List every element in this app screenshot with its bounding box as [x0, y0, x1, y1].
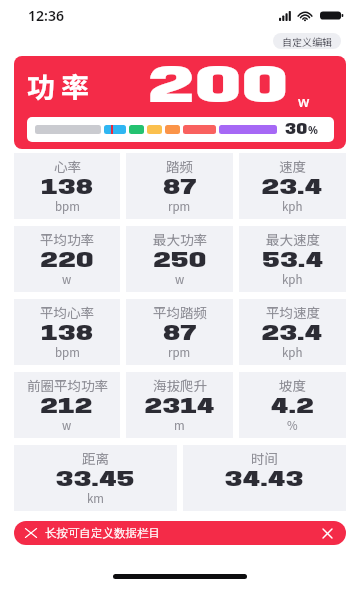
button[interactable]: 平均速度: [239, 299, 346, 365]
staticText: %: [308, 122, 318, 137]
button[interactable]: 踏频: [126, 153, 233, 219]
staticText: 海拔爬升: [153, 375, 207, 395]
button[interactable]: 距离: [14, 445, 177, 511]
staticText: kph: [282, 344, 303, 361]
button[interactable]: 坡度: [239, 372, 346, 438]
staticText: 12:36: [28, 6, 64, 25]
button[interactable]: 心率: [14, 153, 120, 219]
button[interactable]: 平均踏频: [126, 299, 233, 365]
staticText: rpm: [168, 344, 191, 361]
staticText: w: [298, 92, 310, 111]
button[interactable]: 自定义编辑: [273, 33, 341, 49]
staticText: 时间: [251, 448, 278, 468]
staticText: 23.4: [261, 177, 324, 199]
staticText: 200: [148, 60, 290, 115]
button[interactable]: 海拔爬升: [126, 372, 233, 438]
staticText: bpm: [55, 198, 80, 215]
staticText: 138: [41, 323, 94, 345]
staticText: 23.4: [261, 323, 324, 345]
staticText: 2314: [145, 396, 215, 418]
staticText: 坡度: [279, 375, 306, 395]
staticText: w: [62, 417, 72, 434]
button[interactable]: 功率: [14, 56, 346, 149]
button[interactable]: 长按可自定义数据栏目: [14, 521, 346, 545]
staticText: 138: [41, 177, 94, 199]
button[interactable]: 速度: [239, 153, 346, 219]
staticText: %: [287, 417, 298, 434]
staticText: 平均心率: [40, 302, 94, 322]
button[interactable]: Close: [318, 524, 336, 542]
staticText: 212: [40, 396, 94, 418]
staticText: 自定义编辑: [282, 34, 332, 48]
staticText: 心率: [54, 156, 81, 176]
staticText: 前圈平均功率: [27, 375, 108, 395]
staticText: 距离: [82, 448, 109, 468]
staticText: 250: [153, 250, 207, 272]
staticText: 33.45: [56, 469, 135, 491]
staticText: 平均功率: [40, 229, 94, 249]
button[interactable]: 平均心率: [14, 299, 120, 365]
staticText: 功率: [27, 66, 96, 107]
staticText: 平均踏频: [153, 302, 207, 322]
staticText: 87: [163, 323, 197, 345]
staticText: 最大功率: [153, 229, 207, 249]
staticText: m: [174, 417, 185, 434]
staticText: 最大速度: [266, 229, 320, 249]
staticText: bpm: [55, 344, 80, 361]
staticText: 87: [163, 177, 197, 199]
button[interactable]: 最大速度: [239, 226, 346, 292]
staticText: 30: [285, 121, 308, 138]
staticText: kph: [282, 271, 303, 288]
button[interactable]: 前圈平均功率: [14, 372, 120, 438]
button[interactable]: 最大功率: [126, 226, 233, 292]
button[interactable]: 平均功率: [14, 226, 120, 292]
staticText: 220: [40, 250, 94, 272]
staticText: 速度: [279, 156, 306, 176]
staticText: 34.43: [225, 469, 304, 491]
staticText: 53.4: [262, 250, 323, 272]
staticText: km: [87, 490, 104, 507]
staticText: w: [62, 271, 72, 288]
staticText: 4.2: [271, 396, 315, 418]
staticText: w: [175, 271, 185, 288]
staticText: 平均速度: [266, 302, 320, 322]
button[interactable]: 时间: [183, 445, 346, 511]
staticText: kph: [282, 198, 303, 215]
staticText: rpm: [168, 198, 191, 215]
staticText: 踏频: [166, 156, 193, 176]
staticText: 长按可自定义数据栏目: [45, 526, 160, 540]
